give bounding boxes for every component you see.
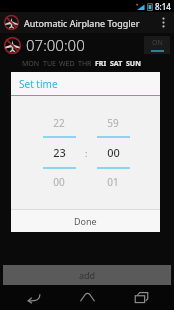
button[interactable]: Home <box>67 285 107 310</box>
button[interactable]: 59 <box>107 116 119 130</box>
button[interactable]: SUN <box>126 59 141 69</box>
button[interactable]: Done <box>11 210 160 232</box>
button[interactable]: TUE <box>43 59 56 69</box>
button[interactable]: 00 <box>53 175 65 189</box>
staticText: Done <box>74 215 97 227</box>
staticText: ON <box>152 38 163 48</box>
button[interactable]: 22 <box>53 116 65 130</box>
staticText: Automatic Airplane Toggler <box>24 17 156 29</box>
staticText: Set time <box>19 77 58 91</box>
button[interactable]: 01 <box>107 175 119 189</box>
button[interactable]: WED <box>59 59 75 69</box>
button[interactable]: Recent apps <box>121 285 161 310</box>
staticText: 07:00:00 <box>26 35 144 55</box>
button[interactable]: THR <box>78 59 92 69</box>
button[interactable]: More options <box>156 12 170 33</box>
staticText: 8:14 <box>155 1 171 12</box>
button[interactable]: ON <box>144 36 170 54</box>
button[interactable]: FRI <box>95 59 107 69</box>
staticText: add <box>79 269 96 281</box>
button[interactable]: SAT <box>110 59 123 69</box>
button[interactable]: 00 <box>107 145 120 160</box>
staticText: : <box>85 147 88 159</box>
button[interactable]: add <box>3 265 171 285</box>
button[interactable]: 23 <box>53 145 66 160</box>
button[interactable]: 07:00:00 <box>0 33 174 57</box>
button[interactable]: MON <box>22 59 40 69</box>
button[interactable]: Back <box>14 285 54 310</box>
